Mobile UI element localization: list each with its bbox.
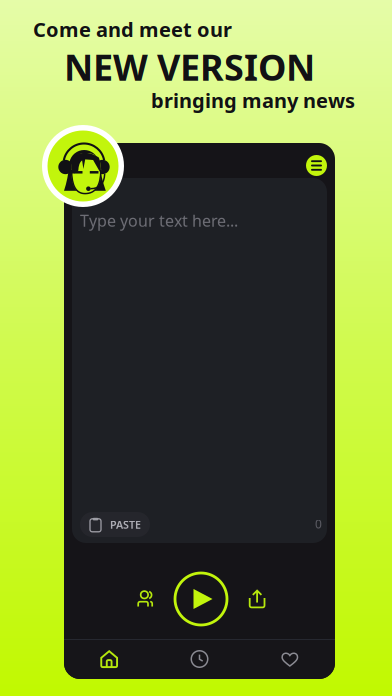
button[interactable]: PASTE bbox=[80, 512, 150, 537]
button[interactable]: Home bbox=[64, 639, 154, 679]
button[interactable]: Share bbox=[235, 577, 279, 621]
staticText: 0 bbox=[315, 516, 322, 532]
button[interactable]: Contacts bbox=[126, 577, 170, 621]
button[interactable]: Menu bbox=[300, 149, 333, 182]
staticText: Type your text here... bbox=[80, 210, 238, 231]
button[interactable]: History bbox=[154, 639, 245, 679]
staticText: Come and meet our bbox=[33, 16, 232, 43]
staticText: PASTE bbox=[110, 517, 141, 532]
staticText: bringing many news bbox=[151, 87, 355, 114]
button[interactable]: Favorites bbox=[245, 639, 335, 679]
staticText: NEW VERSION bbox=[64, 43, 315, 91]
button[interactable]: Play bbox=[171, 569, 231, 629]
